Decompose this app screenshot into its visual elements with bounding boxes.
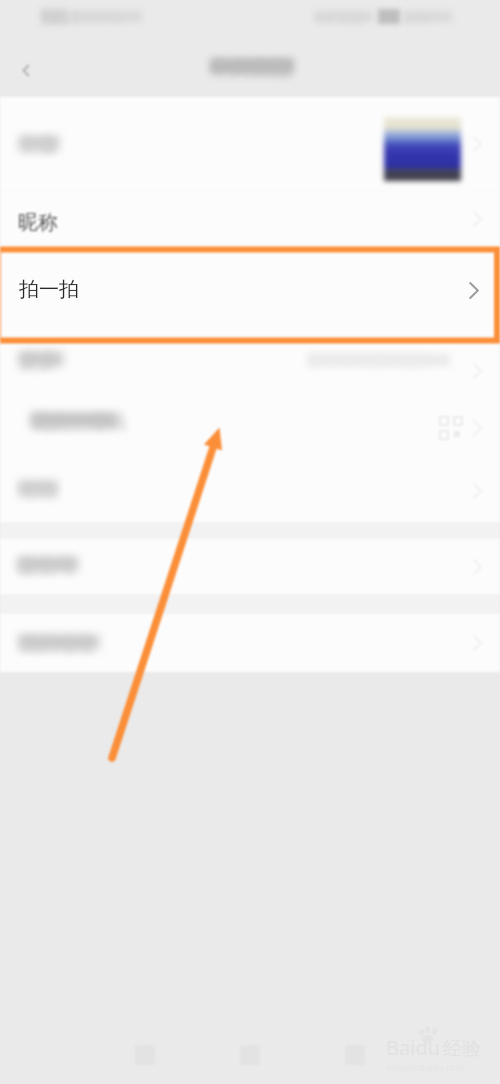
staticText: 性别 (19, 479, 57, 503)
staticText: HD 流量 (315, 9, 364, 27)
staticText: 65% (404, 9, 430, 27)
button[interactable] (0, 614, 500, 672)
staticText: 拍一拍 (19, 277, 79, 302)
staticText: 我的二维码 (31, 411, 126, 435)
button[interactable] (0, 344, 500, 397)
staticText: 经验 (443, 1037, 481, 1061)
staticText: Baidu (386, 1034, 441, 1061)
staticText: 更多 (19, 350, 57, 374)
button[interactable] (0, 398, 500, 458)
button[interactable]: Back (6, 50, 46, 90)
button[interactable] (0, 191, 500, 247)
button[interactable] (0, 459, 500, 522)
button[interactable] (0, 97, 500, 190)
button[interactable] (0, 247, 500, 343)
staticText: 头像 (19, 134, 57, 158)
button[interactable] (0, 539, 500, 594)
staticText: 微信号 (18, 555, 75, 579)
staticText: 昵称 (18, 210, 58, 235)
staticText: 14:33 (41, 7, 80, 27)
staticText: 个人信息 (210, 56, 290, 81)
staticText: 没有填写资料信息 (308, 352, 428, 371)
staticText: 中国移动 (70, 9, 122, 25)
staticText: 我的地址 (19, 633, 95, 657)
